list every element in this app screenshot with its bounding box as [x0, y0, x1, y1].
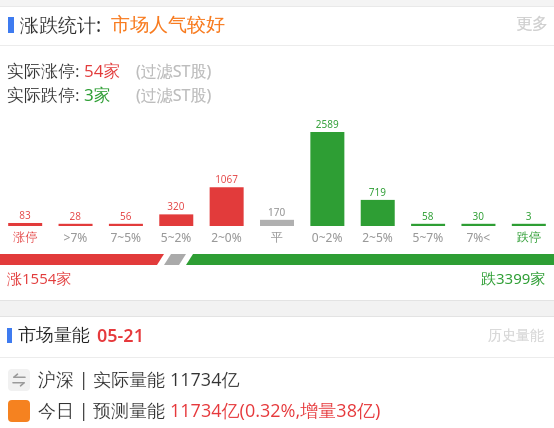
- staticText: 涨1554家: [7, 268, 72, 288]
- button[interactable]: 沪深 | 实际量能 11734亿: [8, 367, 240, 392]
- staticText: 历史量能: [488, 327, 544, 345]
- staticText: 11734亿(0.32%,增量38亿): [170, 398, 381, 423]
- staticText: (过滤ST股): [136, 84, 212, 106]
- staticText: (过滤ST股): [136, 60, 212, 82]
- staticText: 沪深 | 实际量能 11734亿: [38, 367, 240, 392]
- staticText: 更多: [516, 14, 548, 34]
- button[interactable]: 市场量能: [7, 323, 144, 348]
- staticText: 市场人气较好: [111, 13, 225, 37]
- staticText: 54家: [84, 59, 121, 82]
- staticText: 今日 | 预测量能: [38, 398, 170, 423]
- staticText: 3家: [84, 83, 111, 106]
- button[interactable]: 历史量能: [488, 327, 544, 345]
- button[interactable]: 涨跌统计:: [8, 12, 225, 38]
- staticText: 实际涨停:: [7, 59, 84, 82]
- button[interactable]: 今日 | 预测量能: [8, 398, 381, 423]
- button[interactable]: 更多: [516, 14, 548, 34]
- staticText: 05-21: [97, 323, 144, 348]
- staticText: 跌3399家: [481, 268, 546, 288]
- staticText: 涨跌统计:: [20, 12, 102, 38]
- staticText: 市场量能: [18, 324, 90, 347]
- staticText: 实际跌停:: [7, 83, 84, 106]
